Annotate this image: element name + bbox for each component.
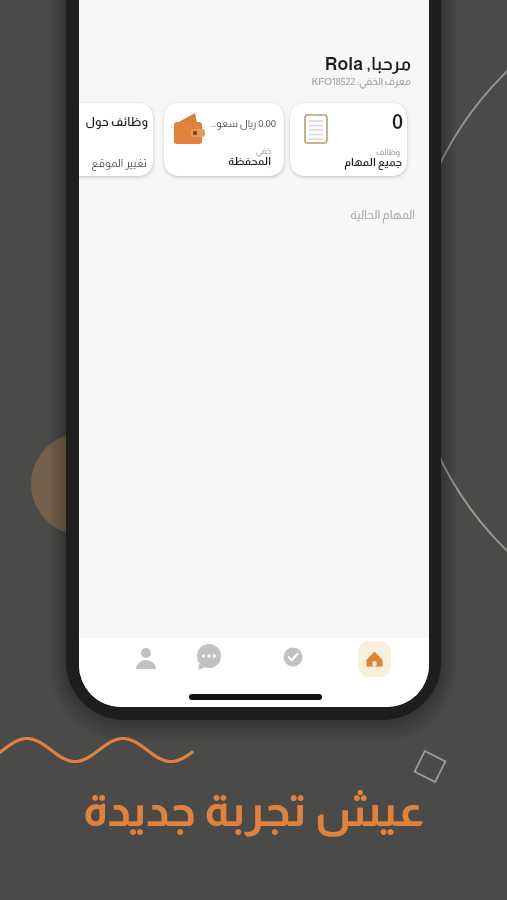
button[interactable]: 0 [290,103,407,176]
staticText: وظائف [376,148,400,157]
button[interactable]: 0.00 ريال سعو... [164,103,284,176]
staticText: 0.00 ريال سعو... [210,118,276,129]
button[interactable] [279,644,307,672]
staticText: معرف الخفي: KFO18522 [79,76,411,87]
button[interactable] [132,644,160,672]
staticText: عيش تجربة جديدة [0,785,507,835]
staticText: تغيير الموقع [91,157,147,169]
staticText: 0 [391,111,403,133]
button[interactable]: وظائف حول [79,103,153,176]
staticText: جميع المهام [344,156,402,168]
button[interactable] [195,644,223,672]
staticText: مرحبا, Rola [79,54,411,74]
staticText: المهام الحالية [79,208,415,221]
staticText: خفي [256,147,271,156]
staticText: وظائف حول [85,115,148,128]
staticText: المحفظة [228,155,271,167]
button[interactable] [358,641,391,677]
